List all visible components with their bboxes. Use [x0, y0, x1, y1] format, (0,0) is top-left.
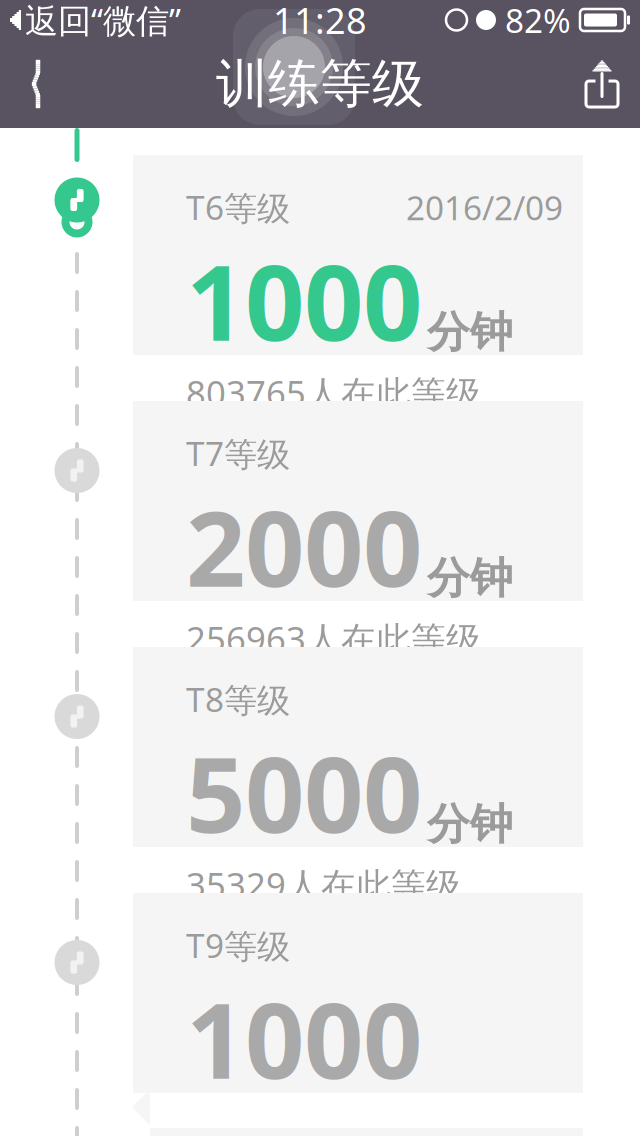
button[interactable]: T8等级: [133, 647, 583, 847]
button[interactable]: AssistiveTouch: [233, 9, 355, 125]
staticText: T7等级: [186, 431, 290, 475]
staticText: 803765人在此等级: [186, 369, 481, 415]
staticText: 82%: [505, 0, 571, 42]
staticText: 256963人在此等级: [186, 615, 481, 661]
staticText: 分钟: [427, 798, 513, 850]
button[interactable]: Share: [564, 40, 640, 128]
staticText: 5000: [186, 723, 422, 861]
staticText: T6等级: [186, 185, 290, 229]
button[interactable]: Back: [0, 40, 76, 128]
staticText: 2016/2/09: [406, 185, 563, 229]
staticText: 11:28: [273, 0, 367, 44]
staticText: 35329人在此等级: [186, 861, 461, 907]
staticText: 返回“微信”: [25, 0, 181, 42]
staticText: T9等级: [186, 923, 290, 967]
button[interactable]: T7等级: [133, 401, 583, 601]
staticText: T8等级: [186, 677, 290, 721]
staticText: 1000: [186, 231, 422, 369]
staticText: 10000: [186, 969, 422, 1136]
staticText: 分钟: [427, 552, 513, 604]
staticText: 2000: [186, 477, 422, 615]
button[interactable]: T6等级: [133, 155, 583, 355]
button[interactable]: T9等级: [133, 893, 583, 1093]
staticText: 训练等级: [216, 52, 424, 116]
staticText: 分钟: [427, 306, 513, 358]
